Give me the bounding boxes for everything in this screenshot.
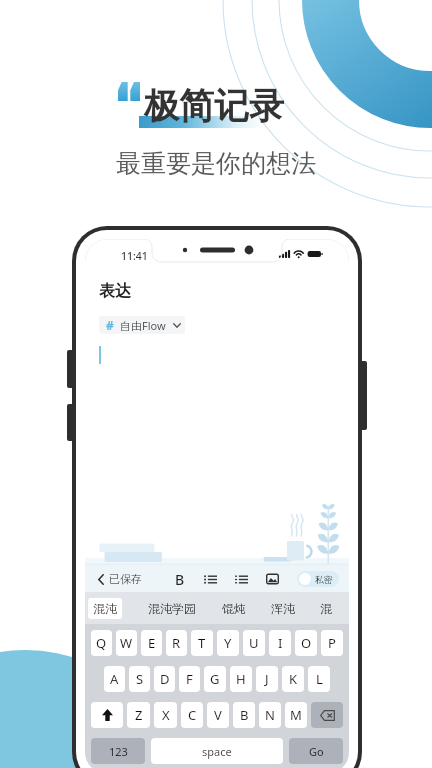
button[interactable]: Backspace — [311, 702, 343, 728]
button[interactable]: M — [285, 702, 307, 728]
staticText: O — [301, 634, 312, 652]
button[interactable]: # — [99, 316, 185, 334]
button[interactable]: U — [243, 630, 265, 656]
staticText: 私密 — [315, 574, 333, 585]
staticText: X — [162, 706, 170, 724]
staticText: Q — [96, 634, 107, 652]
staticText: B — [175, 570, 185, 589]
staticText: S — [136, 670, 144, 688]
button[interactable]: F — [179, 666, 200, 692]
staticText: W — [120, 634, 133, 652]
button[interactable]: 私密 — [297, 571, 339, 587]
staticText: 已保存 — [109, 572, 142, 586]
button[interactable]: K — [282, 666, 304, 692]
staticText: J — [265, 670, 269, 688]
staticText: M — [290, 706, 302, 724]
button[interactable]: J — [256, 666, 278, 692]
staticText: A — [110, 670, 119, 688]
button[interactable]: 混沌 — [88, 598, 122, 619]
button[interactable]: T — [191, 630, 213, 656]
staticText: I — [278, 634, 283, 652]
button[interactable]: Insert image — [266, 573, 279, 585]
staticText: P — [328, 634, 336, 652]
staticText: C — [188, 706, 197, 724]
button[interactable]: L — [308, 666, 330, 692]
staticText: K — [289, 670, 298, 688]
staticText: 最重要是你的想法 — [0, 148, 432, 179]
staticText: Z — [135, 706, 143, 724]
button[interactable]: I — [269, 630, 291, 656]
button[interactable]: B — [172, 568, 188, 591]
button[interactable]: 混 — [320, 601, 332, 616]
button[interactable]: N — [259, 702, 281, 728]
staticText: # — [106, 317, 114, 333]
button[interactable]: 123 — [91, 738, 145, 764]
button[interactable]: R — [166, 630, 187, 656]
button[interactable]: 浑沌 — [271, 601, 295, 616]
button[interactable]: C — [181, 702, 203, 728]
staticText: E — [148, 634, 156, 652]
button[interactable]: W — [116, 630, 137, 656]
staticText: G — [210, 670, 220, 688]
button[interactable]: D — [154, 666, 175, 692]
staticText: H — [236, 670, 246, 688]
button[interactable]: Y — [217, 630, 239, 656]
staticText: T — [198, 634, 206, 652]
button[interactable]: E — [141, 630, 162, 656]
button[interactable]: G — [204, 666, 226, 692]
staticText: Go — [309, 744, 324, 759]
button[interactable]: Go — [289, 738, 343, 764]
button[interactable]: A — [104, 666, 125, 692]
button[interactable]: Shift — [91, 702, 123, 728]
staticText: L — [316, 670, 323, 688]
staticText: N — [265, 706, 275, 724]
staticText: R — [172, 634, 181, 652]
staticText: 11:41 — [121, 249, 148, 263]
staticText: 极简记录 — [144, 84, 284, 128]
staticText: 123 — [109, 744, 128, 759]
staticText: V — [214, 706, 222, 724]
staticText: Y — [224, 634, 232, 652]
staticText: D — [160, 670, 170, 688]
button[interactable]: Numbered list — [235, 574, 248, 585]
button[interactable]: S — [129, 666, 150, 692]
button[interactable]: P — [321, 630, 343, 656]
button[interactable]: Z — [127, 702, 150, 728]
button[interactable]: H — [230, 666, 252, 692]
button[interactable]: B — [233, 702, 255, 728]
staticText: 表达 — [99, 281, 131, 301]
staticText: space — [202, 744, 232, 759]
button[interactable]: Bulleted list — [204, 574, 217, 585]
button[interactable]: X — [154, 702, 177, 728]
staticText: B — [240, 706, 249, 724]
staticText: 混沌 — [93, 601, 117, 616]
staticText: 自由Flow — [120, 318, 166, 333]
button[interactable]: Q — [91, 630, 112, 656]
button[interactable]: space — [151, 738, 283, 764]
button[interactable]: O — [295, 630, 317, 656]
staticText: F — [186, 670, 193, 688]
staticText: U — [249, 634, 259, 652]
button[interactable]: 已保存 — [98, 568, 142, 590]
button[interactable]: 混沌学园 — [148, 601, 196, 616]
button[interactable]: 馄炖 — [222, 601, 246, 616]
button[interactable]: V — [207, 702, 229, 728]
